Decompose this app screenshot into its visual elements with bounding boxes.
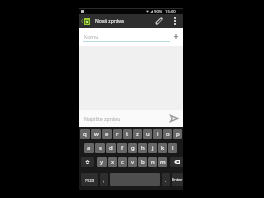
staticText: j bbox=[152, 144, 154, 152]
staticText: q bbox=[83, 130, 87, 138]
button[interactable]: v bbox=[128, 157, 137, 167]
button[interactable]: n bbox=[148, 157, 157, 167]
button[interactable]: m bbox=[158, 157, 167, 167]
staticText: ?123 bbox=[85, 177, 95, 183]
button[interactable]: Delete bbox=[170, 157, 183, 167]
button[interactable]: j bbox=[148, 143, 157, 153]
staticText: e bbox=[105, 130, 109, 138]
staticText: w bbox=[94, 130, 99, 138]
button[interactable]: Shift bbox=[81, 157, 94, 167]
staticText: t bbox=[126, 130, 129, 138]
staticText: k bbox=[161, 144, 165, 152]
staticText: c bbox=[121, 158, 124, 166]
button[interactable]: e bbox=[102, 129, 112, 139]
button[interactable]: s bbox=[95, 143, 105, 153]
button[interactable]: Back bbox=[80, 14, 83, 28]
button[interactable]: r bbox=[113, 129, 122, 139]
staticText: 15:00 bbox=[165, 9, 176, 14]
button[interactable]: q bbox=[80, 129, 90, 139]
staticText: a bbox=[87, 144, 91, 152]
button[interactable]: g bbox=[128, 143, 137, 153]
staticText: x bbox=[111, 158, 115, 166]
button[interactable]: Send bbox=[167, 110, 181, 127]
staticText: Nová zpráva bbox=[95, 18, 124, 25]
button[interactable]: Enter bbox=[172, 173, 183, 186]
staticText: p bbox=[176, 130, 180, 138]
button[interactable]: y bbox=[97, 157, 107, 167]
button[interactable]: f bbox=[117, 143, 127, 153]
staticText: b bbox=[141, 158, 145, 166]
button[interactable]: u bbox=[143, 129, 152, 139]
staticText: Komu bbox=[84, 33, 99, 40]
button[interactable]: a bbox=[84, 143, 94, 153]
staticText: 90% bbox=[154, 9, 163, 14]
button[interactable]: t bbox=[123, 129, 132, 139]
button[interactable]: b bbox=[138, 157, 147, 167]
staticText: . bbox=[165, 177, 167, 184]
staticText: h bbox=[141, 144, 145, 152]
staticText: m bbox=[160, 158, 166, 166]
button[interactable]: k bbox=[158, 143, 167, 153]
staticText: Enter bbox=[172, 177, 183, 182]
button[interactable]: More options bbox=[170, 14, 179, 28]
button[interactable]: . bbox=[162, 173, 170, 186]
button[interactable]: w bbox=[91, 129, 101, 139]
staticText: n bbox=[151, 158, 155, 166]
button[interactable]: d bbox=[106, 143, 116, 153]
staticText: y bbox=[100, 158, 104, 166]
staticText: Napište zprávu bbox=[84, 115, 121, 122]
button[interactable]: l bbox=[168, 143, 177, 153]
staticText: z bbox=[136, 130, 139, 138]
staticText: f bbox=[121, 144, 124, 152]
staticText: r bbox=[116, 130, 119, 138]
staticText: g bbox=[131, 144, 135, 152]
button[interactable]: Attach bbox=[153, 14, 164, 28]
button[interactable]: z bbox=[133, 129, 142, 139]
button[interactable]: p bbox=[173, 129, 182, 139]
staticText: i bbox=[157, 130, 159, 138]
staticText: d bbox=[109, 144, 113, 152]
button[interactable]: o bbox=[163, 129, 172, 139]
staticText: v bbox=[131, 158, 135, 166]
button[interactable]: , bbox=[100, 173, 108, 186]
button[interactable]: Add recipient bbox=[169, 31, 182, 42]
button[interactable]: h bbox=[138, 143, 147, 153]
button[interactable]: i bbox=[153, 129, 162, 139]
staticText: , bbox=[103, 177, 105, 184]
staticText: u bbox=[146, 130, 150, 138]
button[interactable]: c bbox=[118, 157, 127, 167]
staticText: s bbox=[99, 144, 102, 152]
button[interactable]: ?123 bbox=[81, 173, 98, 186]
staticText: l bbox=[172, 144, 174, 152]
staticText: o bbox=[166, 130, 170, 138]
button[interactable]: x bbox=[108, 157, 117, 167]
